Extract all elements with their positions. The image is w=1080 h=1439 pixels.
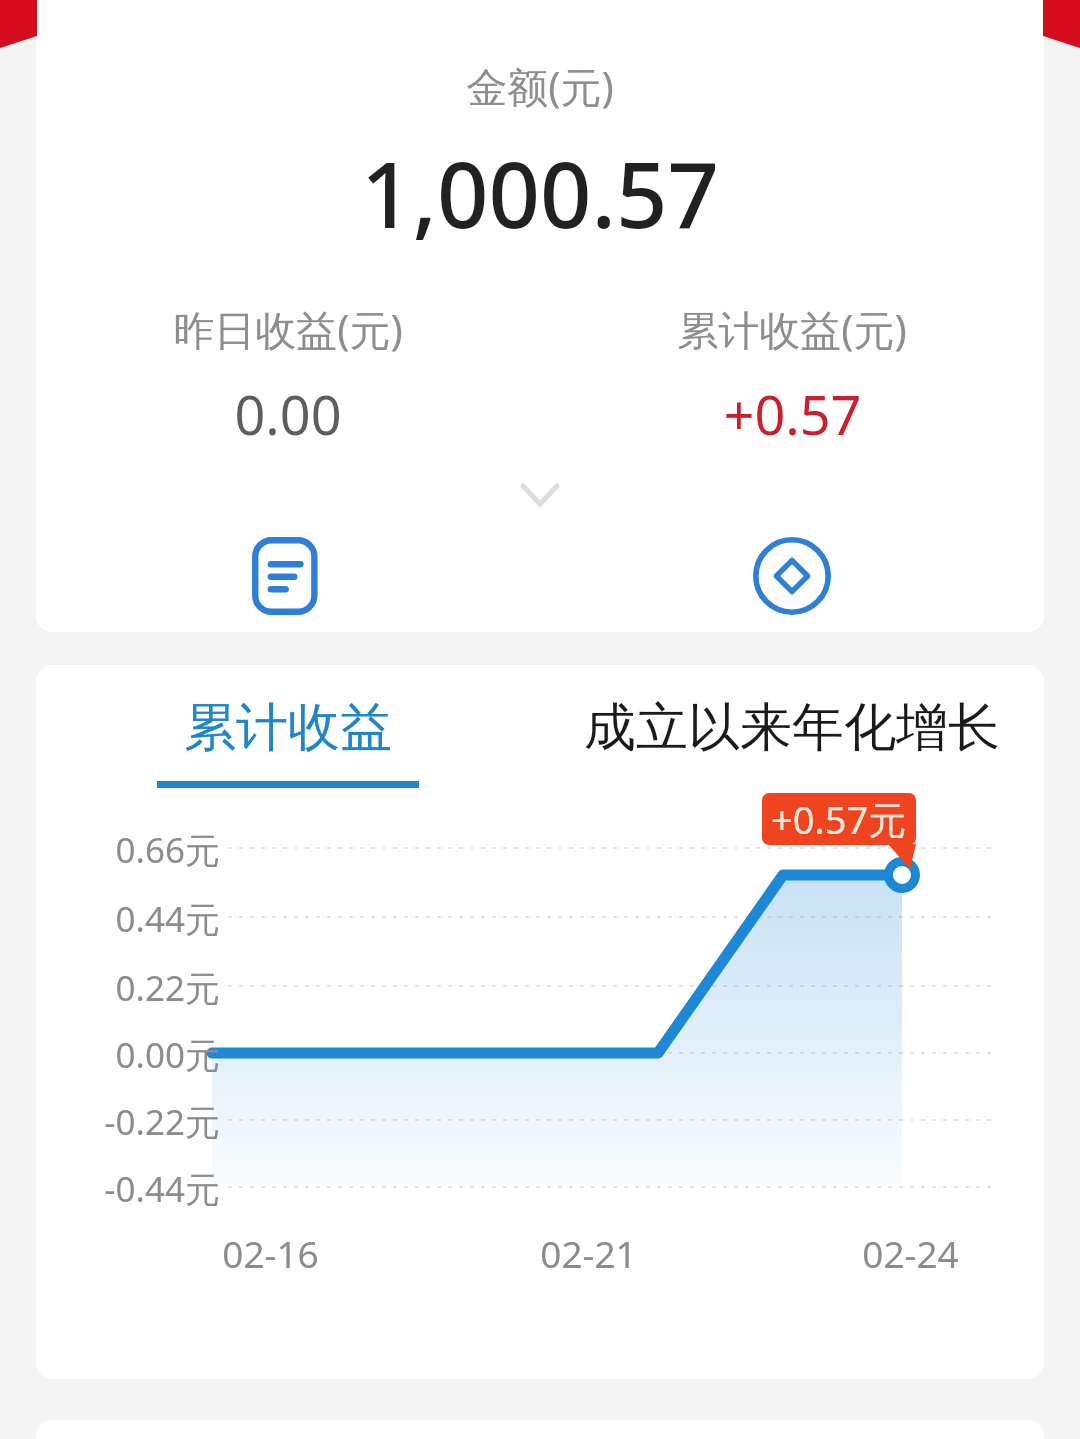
staticText: 0.00元 bbox=[115, 1031, 220, 1079]
staticText: 累计收益(元) bbox=[677, 301, 907, 357]
staticText: +0.57元 bbox=[771, 793, 907, 845]
staticText: 0.66元 bbox=[115, 826, 220, 874]
staticText: 昨日收益(元) bbox=[173, 301, 403, 357]
button[interactable]: 成立以来年化增长 bbox=[540, 695, 1044, 788]
button[interactable]: 累计收益 bbox=[36, 695, 540, 788]
staticText: 02-16 bbox=[222, 1228, 319, 1278]
staticText: 0.22元 bbox=[115, 964, 220, 1012]
button[interactable]: 累计收益(元) bbox=[540, 301, 1044, 451]
button[interactable]: 交易记录 bbox=[540, 533, 1044, 632]
staticText: 0.00 bbox=[234, 377, 342, 451]
staticText: 金额(元) bbox=[466, 58, 614, 114]
staticText: 0.44元 bbox=[115, 895, 220, 943]
staticText: +0.57 bbox=[723, 377, 862, 451]
staticText: -0.22元 bbox=[104, 1098, 220, 1146]
staticText: 02-21 bbox=[540, 1228, 637, 1278]
button[interactable]: 昨日收益(元) bbox=[36, 301, 540, 451]
button[interactable]: 收益明细 bbox=[36, 533, 540, 632]
staticText: -0.44元 bbox=[104, 1165, 220, 1213]
staticText: 02-24 bbox=[862, 1228, 959, 1278]
staticText: 累计收益 bbox=[184, 695, 392, 761]
staticText: 成立以来年化增长 bbox=[584, 695, 1000, 761]
staticText: 1,000.57 bbox=[361, 132, 719, 255]
button[interactable]: 展开更多 bbox=[500, 475, 580, 515]
